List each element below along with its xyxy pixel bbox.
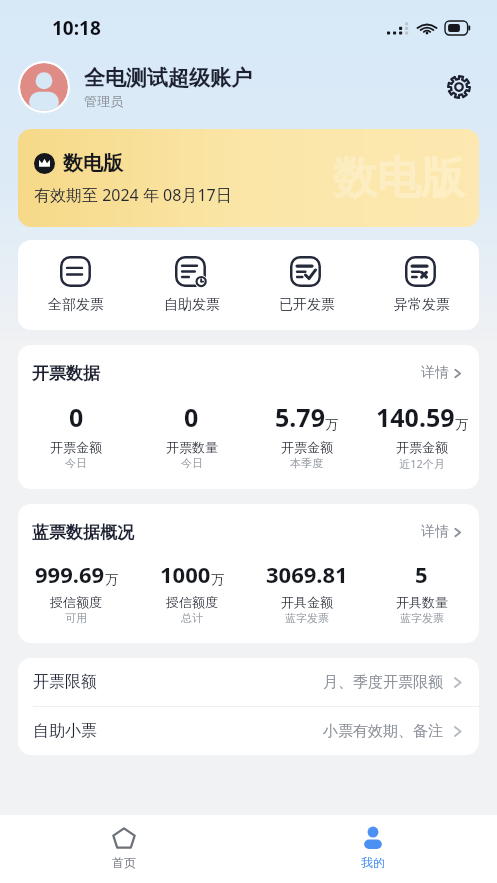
- button[interactable]: 自助小票: [18, 707, 479, 755]
- staticText: 详情: [421, 523, 449, 541]
- button[interactable]: 1000: [134, 559, 249, 625]
- staticText: 开票数据: [32, 363, 419, 384]
- staticText: 今日: [181, 456, 203, 470]
- staticText: 本季度: [290, 456, 323, 470]
- button[interactable]: 异常发票: [364, 256, 479, 314]
- staticText: 开票金额: [281, 439, 333, 455]
- button[interactable]: 5: [364, 559, 479, 625]
- staticText: 首页应用 · HUACHUANGZS.COM: [131, 839, 367, 861]
- button[interactable]: 我的: [248, 815, 497, 883]
- button[interactable]: 0: [18, 400, 134, 470]
- staticText: 0: [184, 400, 199, 434]
- button[interactable]: 数电版: [18, 129, 479, 227]
- button[interactable]: 140.59: [364, 400, 479, 471]
- staticText: 自助发票: [164, 296, 220, 314]
- staticText: 蓝票数据概况: [32, 522, 419, 543]
- staticText: 开具数量: [396, 594, 448, 610]
- staticText: 999.69: [35, 559, 105, 589]
- staticText: 5.79: [275, 400, 325, 434]
- staticText: 今日: [65, 456, 87, 470]
- button[interactable]: Profile avatar: [20, 63, 68, 111]
- button[interactable]: 详情: [419, 519, 465, 545]
- button[interactable]: 0: [134, 400, 249, 470]
- staticText: 开票金额: [396, 439, 448, 455]
- button[interactable]: 详情: [419, 360, 465, 386]
- staticText: 自助小票: [33, 721, 323, 741]
- staticText: 万: [325, 416, 338, 432]
- staticText: 全部发票: [48, 296, 104, 314]
- button[interactable]: 全部发票: [18, 256, 134, 314]
- staticText: 蓝字发票: [400, 611, 444, 625]
- button[interactable]: 自助发票: [134, 256, 249, 314]
- staticText: 开具金额: [281, 594, 333, 610]
- staticText: 开票金额: [50, 439, 102, 455]
- staticText: 异常发票: [394, 296, 450, 314]
- staticText: 5: [415, 559, 428, 589]
- staticText: 0: [69, 400, 84, 434]
- staticText: 数电版: [63, 151, 123, 176]
- staticText: 近12个月: [399, 456, 445, 471]
- staticText: 我的: [361, 855, 385, 870]
- button[interactable]: Settings: [439, 67, 479, 107]
- staticText: 万: [211, 571, 224, 587]
- staticText: 授信额度: [166, 594, 218, 610]
- button[interactable]: 首页: [0, 815, 248, 883]
- button[interactable]: 已开发票: [249, 256, 364, 314]
- staticText: 数电版: [333, 151, 465, 206]
- staticText: 月、季度开票限额: [323, 673, 443, 692]
- staticText: 管理员: [84, 93, 123, 109]
- staticText: 开票数量: [166, 439, 218, 455]
- staticText: 140.59: [376, 400, 455, 434]
- button[interactable]: 999.69: [18, 559, 134, 625]
- button[interactable]: 3069.81: [249, 559, 364, 625]
- button[interactable]: 开票限额: [18, 658, 479, 707]
- staticText: 10:18: [52, 15, 101, 41]
- staticText: 小票有效期、备注: [323, 722, 443, 741]
- button[interactable]: 5.79: [249, 400, 364, 470]
- staticText: 蓝字发票: [285, 611, 329, 625]
- staticText: 万: [105, 571, 118, 587]
- staticText: 可用: [65, 611, 87, 625]
- staticText: 授信额度: [50, 594, 102, 610]
- staticText: 总计: [181, 611, 203, 625]
- staticText: 开票限额: [33, 672, 323, 692]
- staticText: 全电测试超级账户: [84, 65, 252, 91]
- staticText: 已开发票: [279, 296, 335, 314]
- staticText: 3069.81: [266, 559, 348, 589]
- staticText: 有效期至 2024 年 08月17日: [34, 184, 232, 206]
- staticText: 详情: [421, 364, 449, 382]
- staticText: 万: [455, 416, 468, 432]
- staticText: 1000: [160, 559, 211, 589]
- staticText: 首页: [112, 855, 136, 870]
